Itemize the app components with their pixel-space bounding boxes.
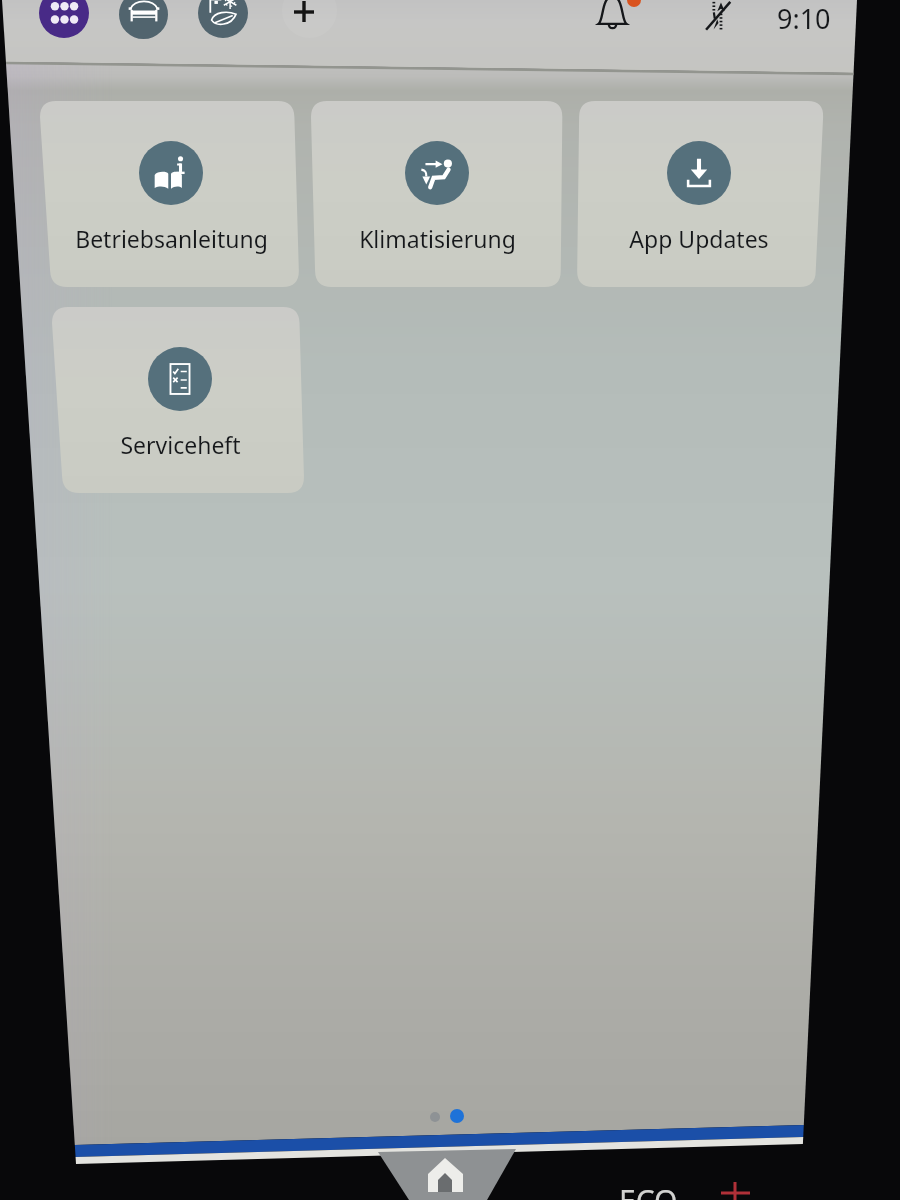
staticText: App Updates [629, 223, 769, 254]
staticText: Klimatisierung [359, 223, 516, 254]
button[interactable]: Navigation muted [703, 0, 734, 31]
button[interactable]: Driving modes [198, 0, 248, 38]
staticText: Serviceheft [120, 429, 241, 460]
button[interactable]: Serviceheft [52, 307, 304, 493]
staticText: Betriebsanleitung [75, 223, 268, 254]
staticText: 9:10 [777, 0, 831, 37]
button[interactable]: Vehicle status [119, 0, 168, 39]
button[interactable]: App Updates [577, 101, 824, 287]
button[interactable]: Klimatisierung [311, 101, 562, 287]
button[interactable]: Notifications [597, 0, 628, 27]
staticText: ECO [619, 1180, 678, 1200]
button[interactable]: Betriebsanleitung [40, 101, 299, 287]
button[interactable]: Add shortcut [282, 0, 337, 38]
button[interactable]: Apps [39, 0, 89, 38]
